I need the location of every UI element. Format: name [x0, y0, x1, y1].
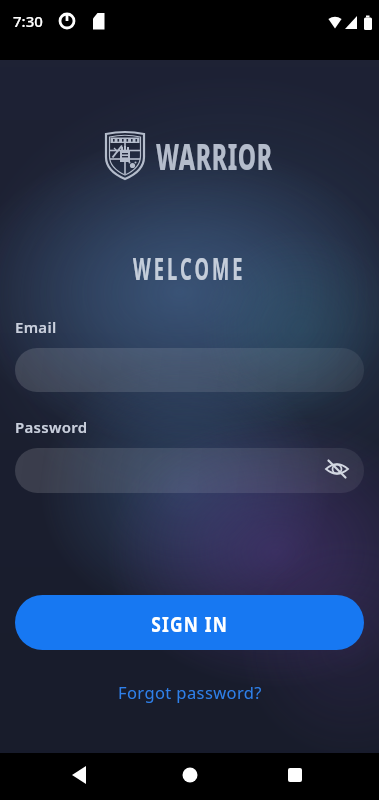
staticText: WELCOME: [133, 248, 246, 289]
staticText: SIGN IN: [151, 608, 229, 638]
staticText: WARRIOR: [156, 132, 273, 181]
staticText: 7:30: [13, 11, 43, 31]
staticText: Email: [15, 317, 57, 337]
staticText: Forgot password?: [118, 681, 262, 703]
staticText: Password: [15, 417, 88, 437]
